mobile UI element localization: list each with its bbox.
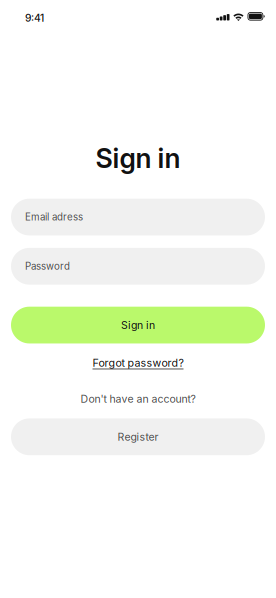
staticText: Password: [25, 260, 70, 272]
button[interactable]: Register: [11, 418, 265, 455]
button[interactable]: Sign in: [11, 307, 265, 343]
button[interactable]: Password: [11, 248, 265, 285]
staticText: Register: [117, 430, 158, 443]
staticText: Email adress: [25, 211, 83, 223]
staticText: Sign in: [121, 319, 155, 331]
staticText: Don't have an account?: [80, 392, 195, 405]
staticText: Sign in: [95, 142, 180, 174]
button[interactable]: Email adress: [11, 199, 265, 235]
button[interactable]: Forgot password?: [92, 356, 183, 369]
staticText: Forgot password?: [92, 356, 183, 369]
staticText: 9:41: [25, 12, 44, 24]
